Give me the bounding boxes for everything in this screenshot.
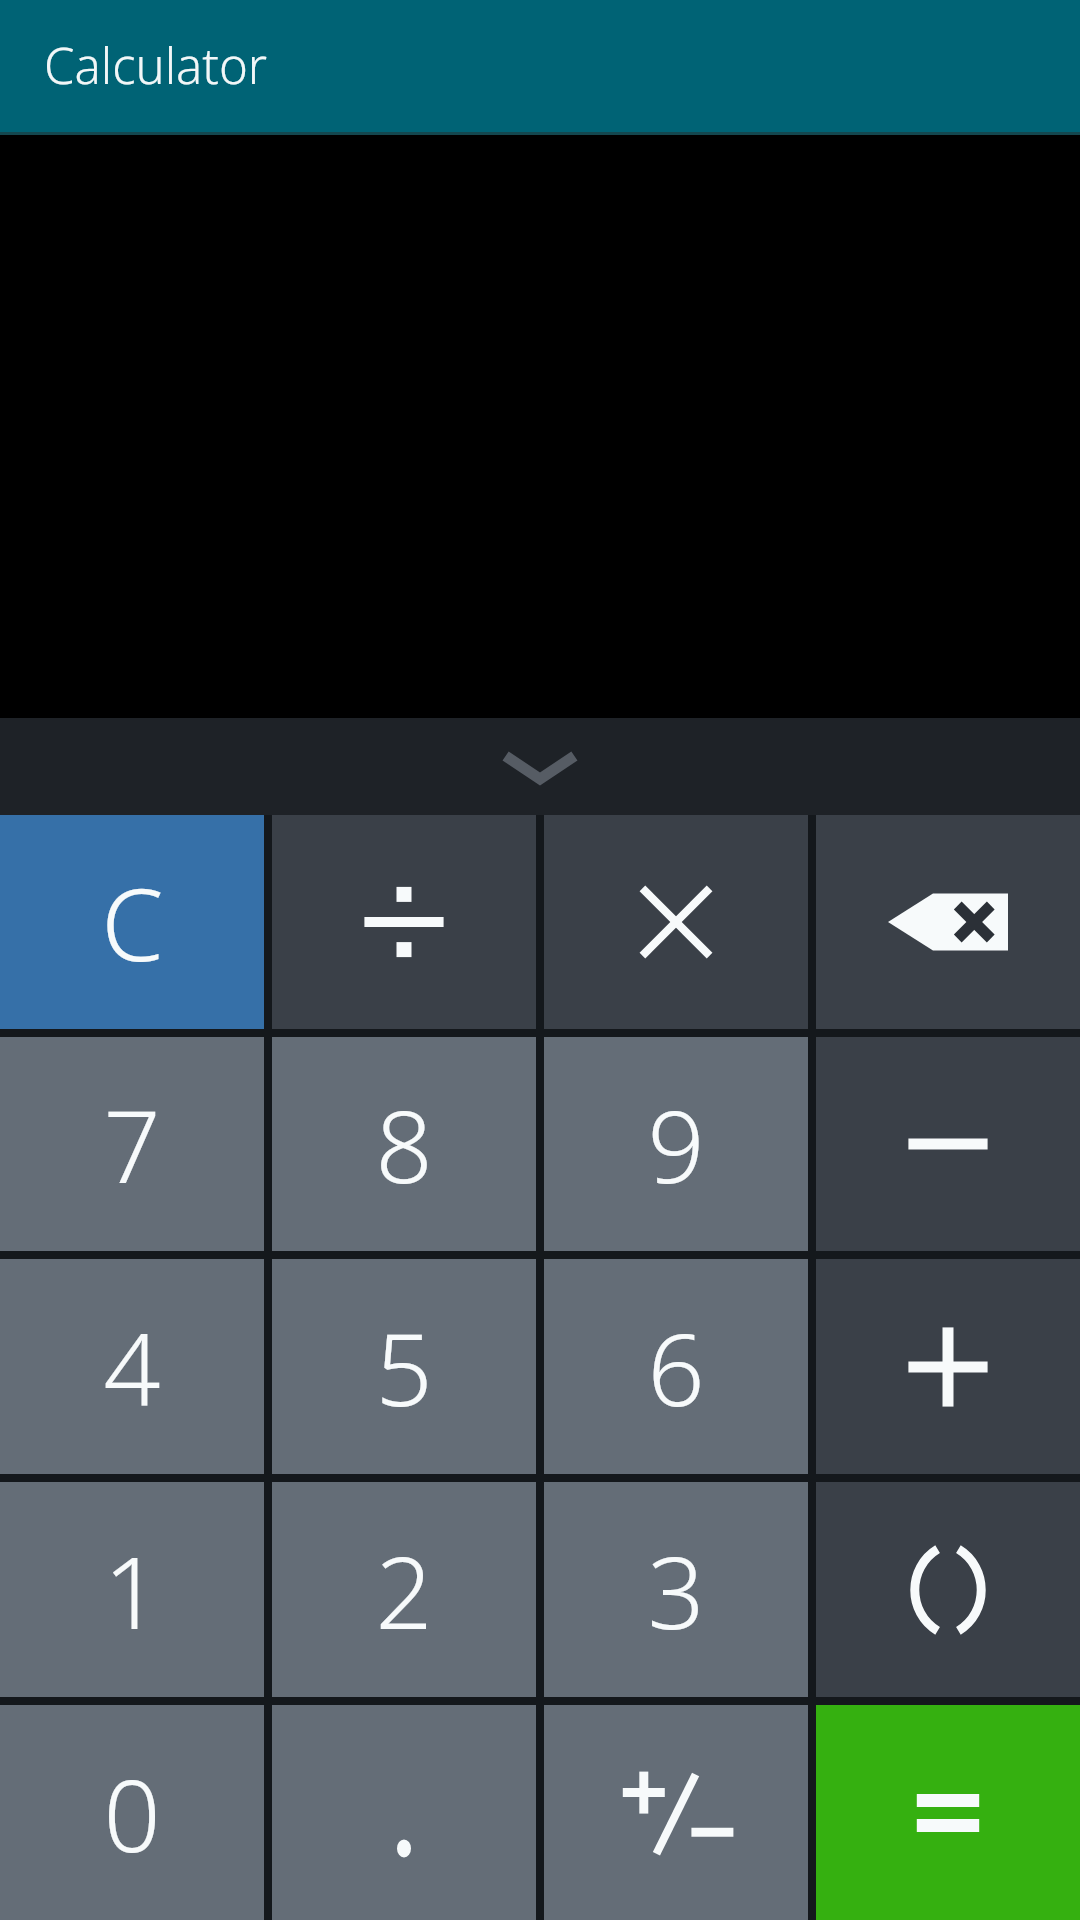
button[interactable]: 9 bbox=[544, 1037, 808, 1251]
button[interactable]: Equals bbox=[816, 1705, 1080, 1920]
staticText: Calculator bbox=[44, 32, 268, 99]
button[interactable]: Expand history bbox=[0, 718, 1080, 815]
button[interactable]: 8 bbox=[272, 1037, 536, 1251]
staticText: 1 bbox=[103, 1522, 161, 1658]
staticText: 4 bbox=[103, 1299, 161, 1435]
button[interactable]: 2 bbox=[272, 1482, 536, 1697]
button[interactable]: 1 bbox=[0, 1482, 264, 1697]
button[interactable]: 5 bbox=[272, 1259, 536, 1474]
button[interactable]: C bbox=[0, 815, 264, 1029]
button[interactable]: 3 bbox=[544, 1482, 808, 1697]
staticText: 3 bbox=[647, 1522, 705, 1658]
button[interactable]: Decimal point bbox=[272, 1705, 536, 1920]
staticText: C bbox=[101, 854, 164, 990]
button[interactable]: Plus bbox=[816, 1259, 1080, 1474]
button[interactable]: Plus minus bbox=[544, 1705, 808, 1920]
staticText: 0 bbox=[103, 1745, 161, 1881]
staticText: 9 bbox=[647, 1076, 705, 1212]
button[interactable]: Multiply bbox=[544, 815, 808, 1029]
staticText: 2 bbox=[375, 1522, 433, 1658]
button[interactable]: Minus bbox=[816, 1037, 1080, 1251]
button[interactable]: 4 bbox=[0, 1259, 264, 1474]
staticText: 5 bbox=[375, 1299, 433, 1435]
button[interactable]: Parentheses bbox=[816, 1482, 1080, 1697]
staticText: 7 bbox=[103, 1076, 161, 1212]
button[interactable]: 7 bbox=[0, 1037, 264, 1251]
button[interactable]: Delete bbox=[816, 815, 1080, 1029]
button[interactable]: 6 bbox=[544, 1259, 808, 1474]
button[interactable]: Divide bbox=[272, 815, 536, 1029]
staticText: 8 bbox=[375, 1076, 433, 1212]
button[interactable]: 0 bbox=[0, 1705, 264, 1920]
staticText: 6 bbox=[647, 1299, 705, 1435]
